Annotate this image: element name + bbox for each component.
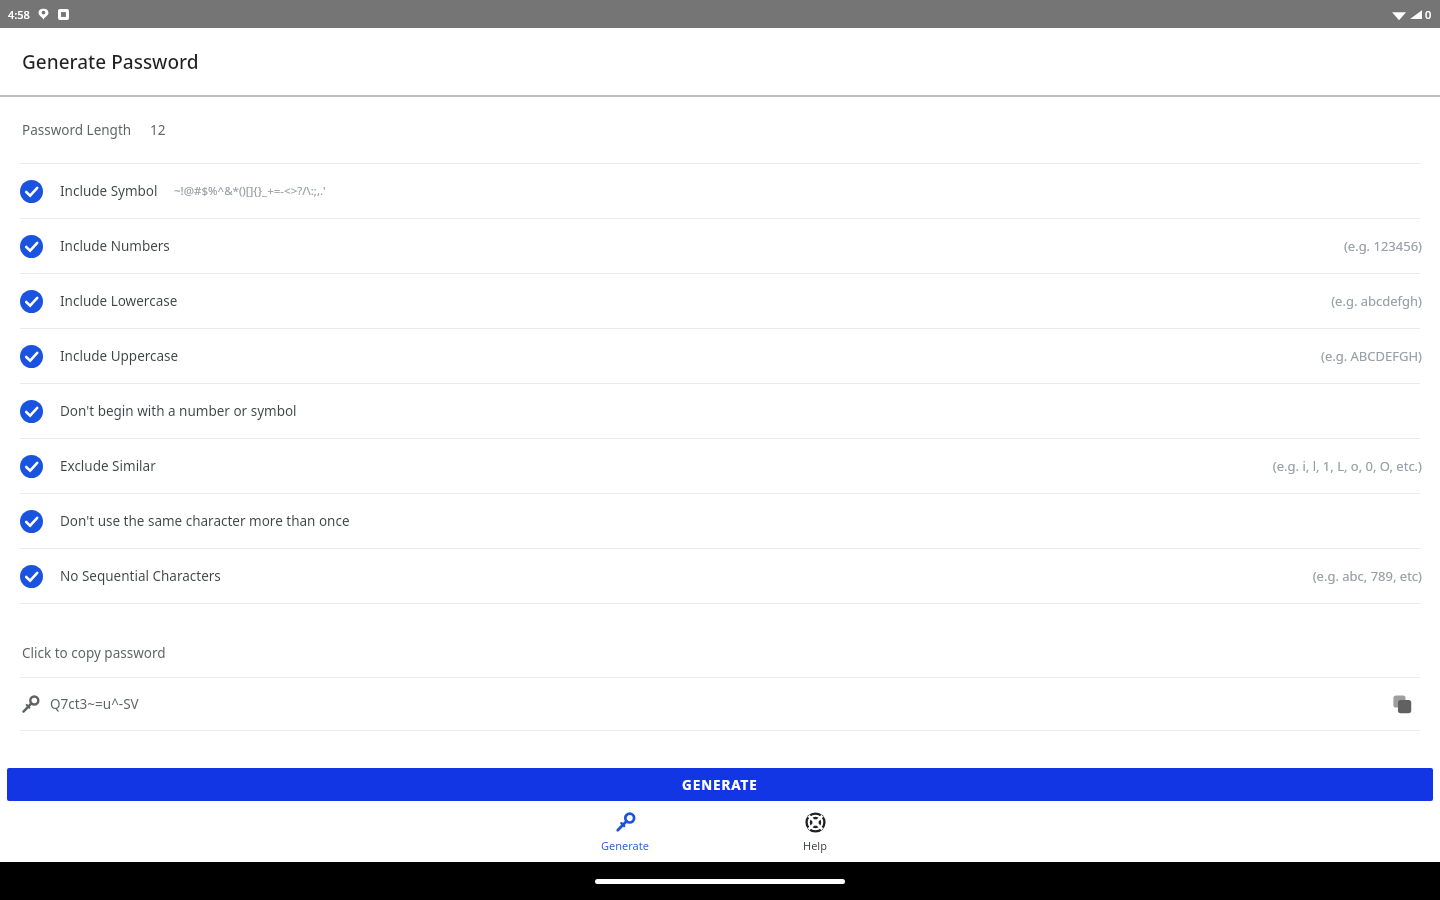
staticText: Include Symbol	[60, 182, 158, 200]
button[interactable]: Include Numbers	[0, 219, 1440, 273]
staticText: (e.g. abcdefgh)	[1331, 292, 1422, 310]
staticText: Include Numbers	[60, 237, 170, 255]
button[interactable]: Include Uppercase	[0, 329, 1440, 383]
button[interactable]: Don't begin with a number or symbol	[0, 384, 1440, 438]
button[interactable]: Include Symbol	[0, 164, 1440, 218]
staticText: GENERATE	[682, 776, 758, 794]
button[interactable]: Copy password	[1385, 687, 1419, 721]
staticText: Don't use the same character more than o…	[60, 512, 350, 530]
staticText: Help	[803, 838, 827, 853]
staticText: 12	[150, 121, 166, 139]
button[interactable]: Include Lowercase	[0, 274, 1440, 328]
button[interactable]: Help	[720, 803, 910, 862]
button[interactable]: No Sequential Characters	[0, 549, 1440, 603]
button[interactable]: Generate	[530, 803, 720, 862]
staticText: Click to copy password	[22, 644, 166, 662]
staticText: Q7ct3~=u^-SV	[50, 695, 139, 713]
staticText: Exclude Similar	[60, 457, 156, 475]
staticText: Password Length	[22, 121, 132, 139]
staticText: Don't begin with a number or symbol	[60, 402, 297, 420]
staticText: (e.g. i, l, 1, L, o, 0, O, etc.)	[1272, 457, 1422, 475]
staticText: Include Uppercase	[60, 347, 179, 365]
staticText: Generate Password	[22, 49, 199, 75]
staticText: 4:58	[8, 7, 30, 22]
staticText: Generate	[601, 838, 649, 853]
staticText: 0	[1425, 7, 1432, 22]
button[interactable]: Don't use the same character more than o…	[0, 494, 1440, 548]
staticText: (e.g. ABCDEFGH)	[1320, 347, 1422, 365]
staticText: (e.g. abc, 789, etc)	[1312, 567, 1422, 585]
button[interactable]: Password Length	[0, 97, 1440, 163]
button[interactable]: Exclude Similar	[0, 439, 1440, 493]
button[interactable]: GENERATE	[7, 768, 1433, 801]
staticText: Include Lowercase	[60, 292, 178, 310]
staticText: (e.g. 123456)	[1343, 237, 1422, 255]
staticText: ~!@#$%^&*()[]{}_+=-<>?/\:;,.'	[174, 183, 326, 199]
staticText: No Sequential Characters	[60, 567, 221, 585]
button[interactable]: Q7ct3~=u^-SV	[0, 678, 1440, 730]
